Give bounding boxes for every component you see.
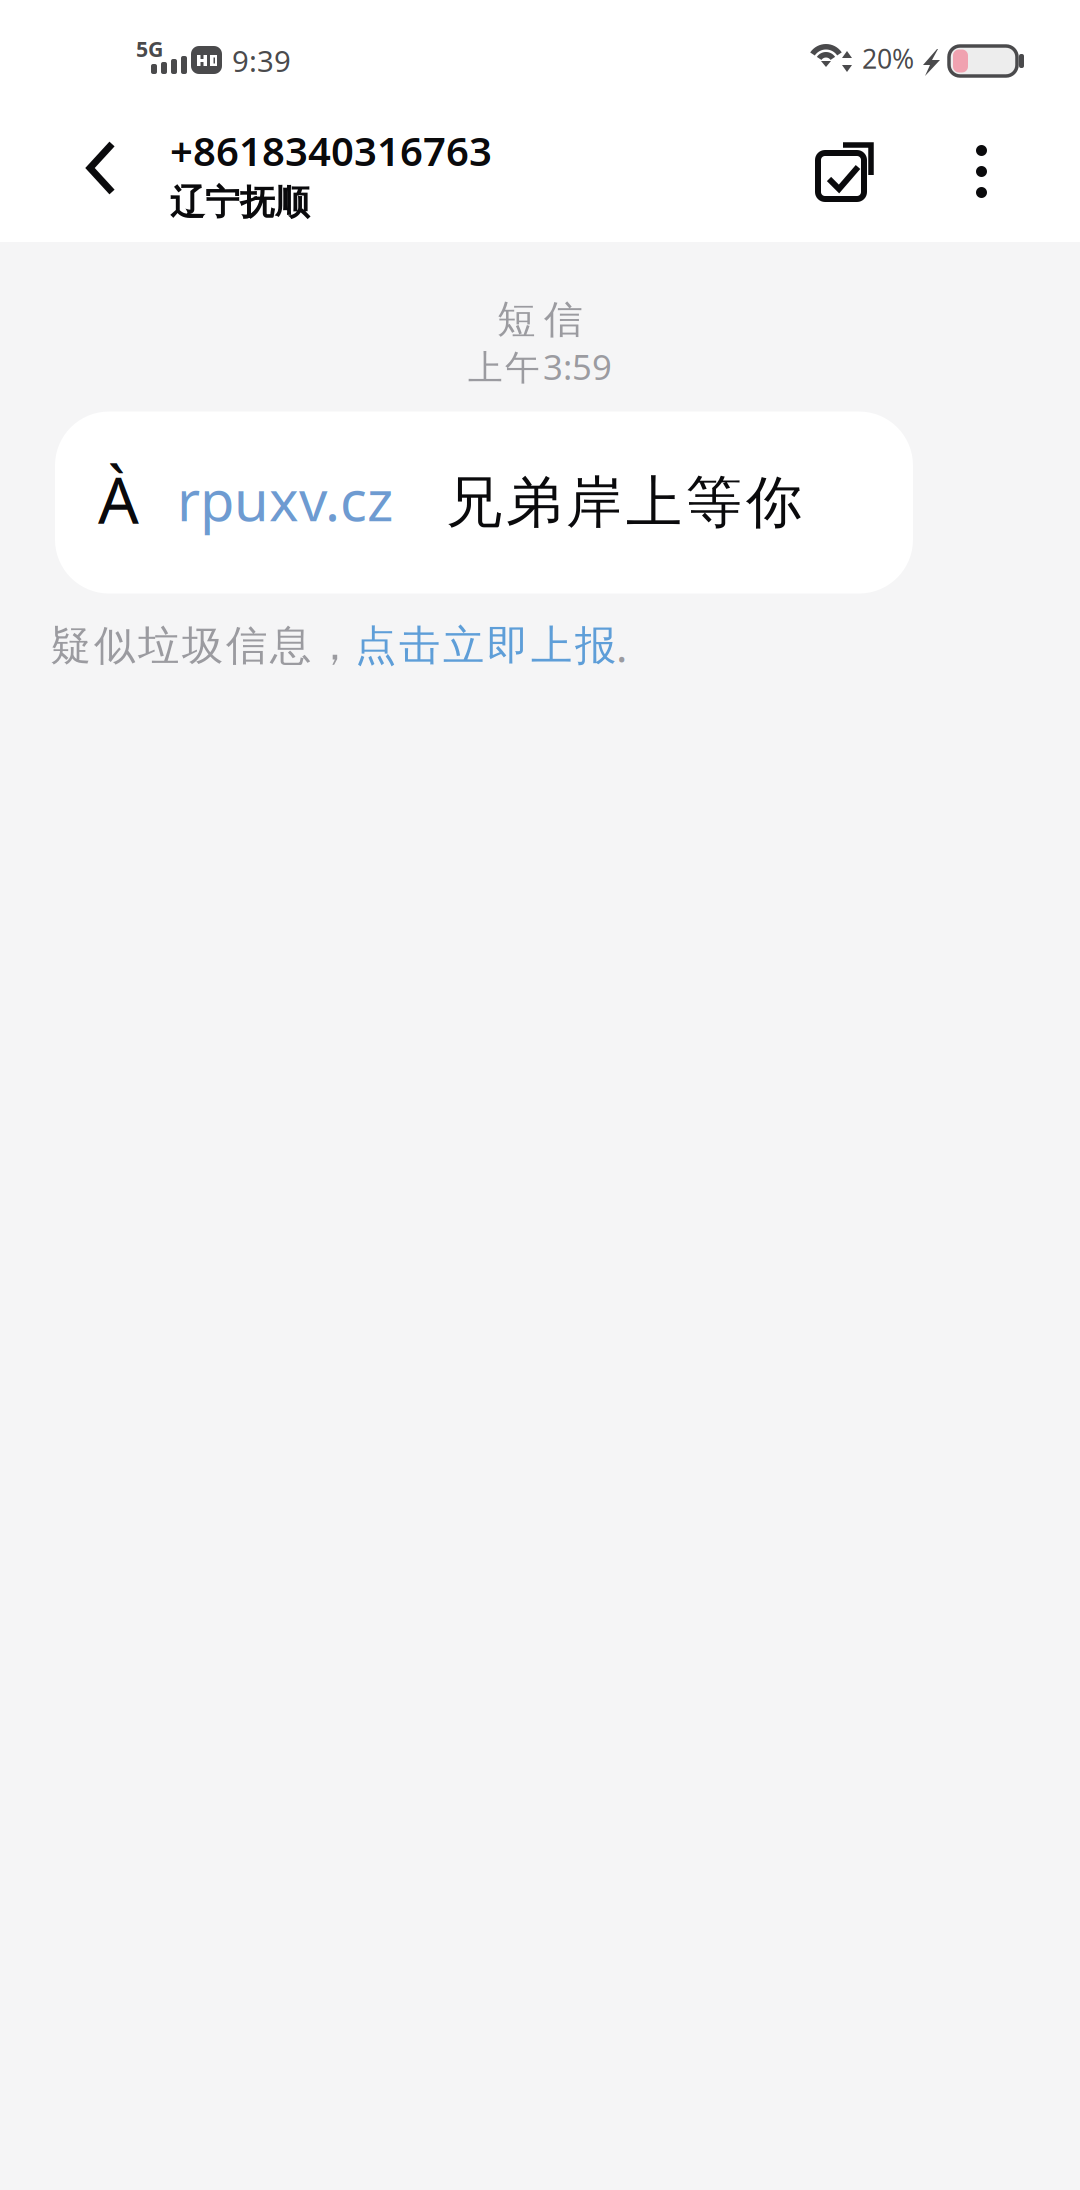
staticText: 上 午 3:59 xyxy=(468,343,612,389)
staticText: 短 信 xyxy=(497,296,583,343)
button[interactable]: Back xyxy=(0,112,170,242)
staticText: +8618340316763 xyxy=(170,124,492,177)
staticText: 辽宁抚顺 xyxy=(170,181,310,224)
staticText: rpuxv.cz xyxy=(177,462,393,537)
staticText: À xyxy=(98,456,139,541)
button[interactable]: 点 击 立 即 上 报 xyxy=(355,620,616,671)
staticText: 20% xyxy=(862,41,914,76)
staticText: . xyxy=(616,617,627,674)
staticText: 兄 弟 岸 上 等 你 xyxy=(446,468,802,537)
button[interactable]: More options xyxy=(917,112,1046,242)
staticText: 9:39 xyxy=(232,41,291,80)
button[interactable]: Select messages xyxy=(793,112,917,242)
staticText: 5G xyxy=(136,35,163,63)
staticText: 疑 似 垃 圾 信 息 ， xyxy=(50,620,355,671)
staticText: 点 击 立 即 上 报 xyxy=(355,620,616,671)
